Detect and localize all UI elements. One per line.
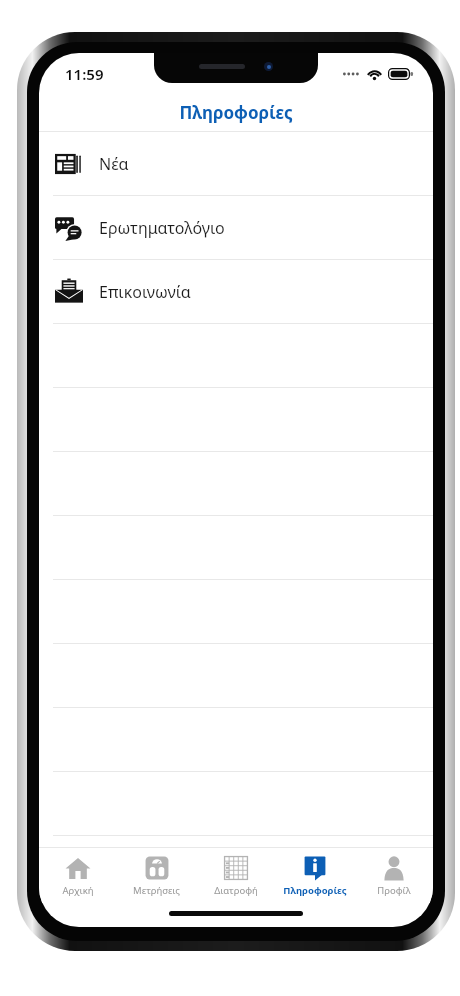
button[interactable]: Προφίλ: [354, 848, 433, 903]
staticText: Διατροφή: [214, 884, 258, 897]
button[interactable]: Επικοινωνία: [39, 260, 433, 324]
button[interactable]: Πληροφορίες: [275, 848, 354, 903]
button[interactable]: Αρχική: [39, 848, 117, 903]
staticText: Πληροφορίες: [179, 101, 293, 124]
staticText: 11:59: [65, 64, 104, 84]
staticText: Προφίλ: [377, 884, 411, 897]
staticText: Ερωτηματολόγιο: [99, 217, 225, 239]
button[interactable]: Μετρήσεις: [117, 848, 196, 903]
staticText: Μετρήσεις: [133, 884, 180, 897]
button[interactable]: Ερωτηματολόγιο: [39, 196, 433, 260]
staticText: Επικοινωνία: [99, 281, 191, 303]
staticText: Πληροφορίες: [283, 884, 347, 897]
button[interactable]: Διατροφή: [196, 848, 275, 903]
button[interactable]: Νέα: [39, 132, 433, 196]
staticText: Αρχική: [62, 884, 94, 897]
staticText: Νέα: [99, 153, 129, 175]
